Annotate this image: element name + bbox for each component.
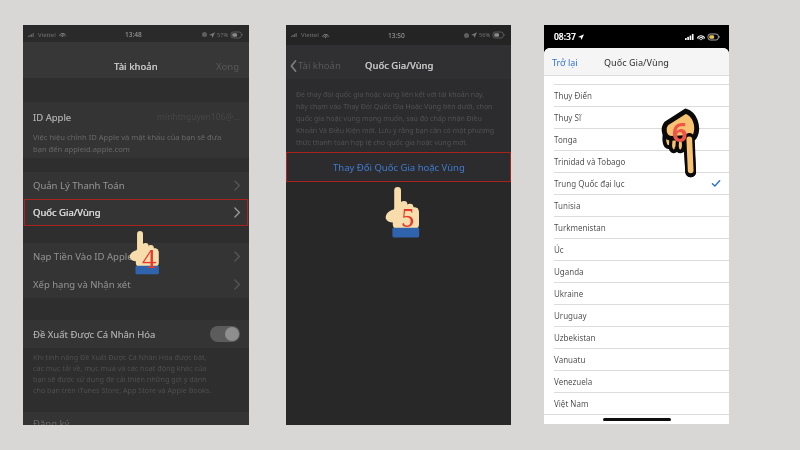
staticText: Trung Quốc đại lục (554, 178, 625, 189)
button[interactable]: Quản Lý Thanh Toán (23, 172, 249, 199)
staticText: minhtnguyen106@... (157, 111, 240, 123)
staticText: 5 (401, 200, 415, 234)
button[interactable]: Turkmenistan (544, 216, 729, 238)
staticText: Để thay đổi quốc gia hoặc vùng liên kết … (296, 90, 485, 100)
staticText: Vanuatu (554, 354, 586, 365)
button[interactable]: Úc (544, 238, 729, 260)
staticText: bạn sẽ được sử dụng để cải thiện những g… (33, 374, 207, 384)
staticText: quốc gia hoặc vùng mong muốn, sau đó chấ… (296, 114, 482, 124)
staticText: Tài khoản (298, 59, 341, 72)
staticText: Uruguay (554, 310, 587, 321)
button[interactable]: Thay Đổi Quốc Gia hoặc Vùng (286, 152, 511, 182)
button[interactable]: Tài khoản (286, 53, 347, 78)
button[interactable]: Đề Xuất Được Cá Nhân Hóa (23, 320, 249, 348)
staticText: Turkmenistan (554, 222, 606, 233)
staticText: Đề Xuất Được Cá Nhân Hóa (33, 328, 156, 341)
staticText: 57% (217, 31, 229, 39)
staticText: 13:48 (125, 30, 142, 39)
staticText: Viettel (301, 31, 319, 39)
staticText: hãy chạm vào Thay Đổi Quốc Gia Hoặc Vùng… (296, 102, 493, 112)
staticText: Quốc Gia/Vùng (365, 59, 434, 72)
staticText: Quốc Gia/Vùng (604, 56, 669, 68)
staticText: Tài khoản (114, 60, 158, 73)
staticText: Uzbekistan (554, 332, 596, 343)
staticText: cho bạn trên iTunes Store, App Store và … (33, 385, 212, 395)
button[interactable]: Uganda (544, 260, 729, 282)
staticText: Úc (554, 244, 564, 255)
button[interactable]: Trinidad và Tobago (544, 150, 729, 172)
button[interactable]: Trung Quốc đại lục (544, 172, 729, 194)
staticText: Khi tính năng Đề Xuất Được Cá Nhân Hóa đ… (33, 352, 207, 362)
button[interactable]: Uzbekistan (544, 326, 729, 348)
button[interactable]: ID Apple (23, 102, 249, 132)
staticText: các mục tải về, mục mua và các hoạt động… (33, 363, 207, 373)
staticText: Việt Nam (554, 398, 589, 409)
staticText: 08:37 (554, 31, 576, 43)
staticText: Uganda (554, 266, 584, 277)
staticText: Đăng ký (33, 417, 70, 425)
button[interactable]: Venezuela (544, 370, 729, 392)
button[interactable]: Personalized recommendations toggle (210, 326, 240, 342)
button[interactable]: Ukraine (544, 282, 729, 304)
staticText: ID Apple (33, 111, 72, 124)
staticText: Thụy Điển (554, 90, 592, 101)
staticText: Viettel (38, 31, 56, 39)
button[interactable]: Quốc Gia/Vùng (23, 199, 249, 226)
staticText: 4 (142, 240, 157, 275)
staticText: Thụy Sĩ (554, 112, 581, 123)
staticText: 56% (479, 31, 491, 39)
button[interactable]: Thụy Điển (544, 84, 729, 106)
button[interactable]: Thụy Sĩ (544, 106, 729, 128)
staticText: Việc hiệu chỉnh ID Apple và mật khẩu của… (33, 132, 222, 142)
button[interactable]: Trở lại (544, 51, 586, 73)
staticText: Trở lại (552, 56, 578, 68)
staticText: 13:50 (388, 31, 405, 40)
staticText: Venezuela (554, 376, 593, 387)
button[interactable]: Vanuatu (544, 348, 729, 370)
staticText: Quản Lý Thanh Toán (33, 179, 125, 192)
button[interactable]: Uruguay (544, 304, 729, 326)
staticText: Tonga (554, 134, 578, 145)
staticText: 6 (672, 113, 688, 150)
staticText: Quốc Gia/Vùng (33, 206, 101, 219)
button[interactable]: Việt Nam (544, 392, 729, 414)
button[interactable]: Xếp hạng và Nhận xét (23, 270, 249, 298)
button[interactable]: Tonga (544, 128, 729, 150)
staticText: Nạp Tiền Vào ID Apple (33, 250, 133, 263)
button[interactable]: Nạp Tiền Vào ID Apple (23, 243, 249, 270)
staticText: Ukraine (554, 288, 584, 299)
staticText: Khoản Và Điều Kiện mới. Lưu ý rằng bạn c… (296, 126, 495, 136)
button[interactable]: Tunisia (544, 194, 729, 216)
staticText: thức thanh toán hợp lệ cho quốc gia hoặc… (296, 138, 468, 148)
staticText: Thay Đổi Quốc Gia hoặc Vùng (333, 161, 465, 174)
staticText: Xong (216, 60, 240, 73)
staticText: Xếp hạng và Nhận xét (33, 278, 131, 291)
staticText: Trinidad và Tobago (554, 156, 626, 167)
staticText: Tunisia (554, 200, 581, 211)
staticText: bạn đến appleid.apple.com (33, 144, 130, 154)
button[interactable]: Xong (207, 54, 249, 79)
